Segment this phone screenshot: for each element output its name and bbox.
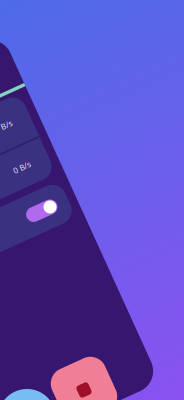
staticText: 0 B/s — [42, 132, 61, 143]
staticText: 0 B/s — [42, 177, 61, 188]
